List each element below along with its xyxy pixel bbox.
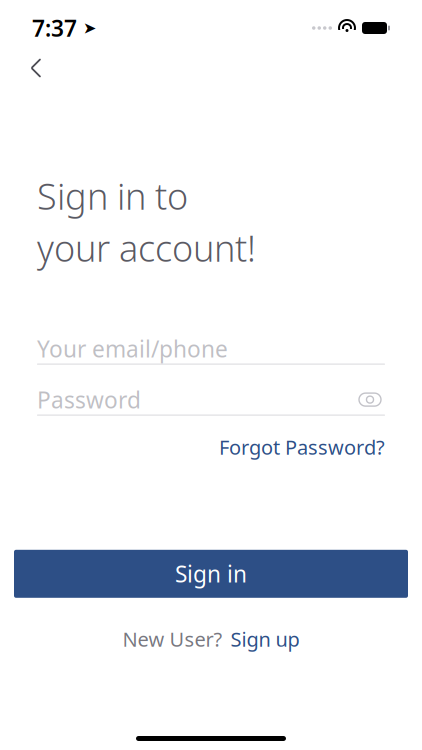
- staticText: 7:37: [32, 13, 77, 43]
- button[interactable]: Back: [14, 46, 58, 90]
- staticText: Your email/phone: [37, 334, 228, 364]
- staticText: Sign up: [230, 626, 299, 652]
- staticText: New User?: [122, 626, 222, 652]
- staticText: Forgot Password?: [219, 434, 385, 460]
- staticText: Sign in: [175, 559, 247, 589]
- staticText: Sign in to: [37, 172, 188, 220]
- button[interactable]: Sign up: [230, 626, 299, 652]
- staticText: Password: [37, 385, 141, 415]
- button[interactable]: Forgot Password?: [219, 428, 385, 466]
- staticText: ➤: [77, 19, 96, 37]
- button[interactable]: Sign in: [14, 550, 408, 598]
- button[interactable]: Show password: [355, 388, 385, 412]
- staticText: your account!: [37, 224, 256, 272]
